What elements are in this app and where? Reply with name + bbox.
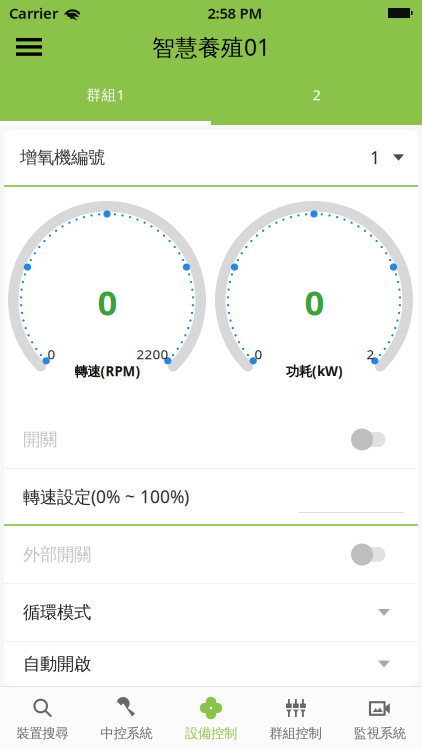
staticText: 0 [254,345,262,363]
staticText: 中控系統 [101,725,153,741]
staticText: 2 [366,345,374,363]
button[interactable]: 設備控制 [169,687,253,750]
staticText: 2 [312,85,320,104]
staticText: 裝置搜尋 [16,725,68,741]
button[interactable]: 增氧機編號 [4,130,418,185]
staticText: 群組控制 [269,725,321,741]
staticText: 2200 [136,345,168,363]
staticText: 增氧機編號 [20,147,105,168]
staticText: 0 [97,279,117,325]
button[interactable]: 自動開啟 [4,642,418,686]
button[interactable]: 監視系統 [338,687,422,750]
staticText: 0 [304,279,324,325]
staticText: Carrier [9,3,58,23]
button[interactable]: 群組控制 [253,687,338,750]
staticText: 轉速(RPM) [74,362,140,380]
staticText: 監視系統 [354,725,406,741]
staticText: 自動開啟 [23,653,91,675]
staticText: 外部開關 [23,544,91,565]
staticText: 循環模式 [23,602,91,623]
button[interactable]: 循環模式 [4,584,418,641]
staticText: 智慧養殖01 [152,32,270,62]
button[interactable]: 2 [211,68,422,125]
button[interactable]: 中控系統 [84,687,169,750]
staticText: 開關 [23,429,57,450]
staticText: 0 [47,345,55,363]
button[interactable]: 群組1 [0,68,211,125]
staticText: 功耗(kW) [286,362,343,380]
button[interactable]: 裝置搜尋 [0,687,84,750]
staticText: 設備控制 [185,725,237,741]
staticText: 群組1 [86,85,124,104]
staticText: 1 [370,146,380,169]
staticText: 2:58 PM [207,3,262,23]
button[interactable]: Menu [0,26,58,68]
staticText: 轉速設定(0% ~ 100%) [23,485,189,508]
